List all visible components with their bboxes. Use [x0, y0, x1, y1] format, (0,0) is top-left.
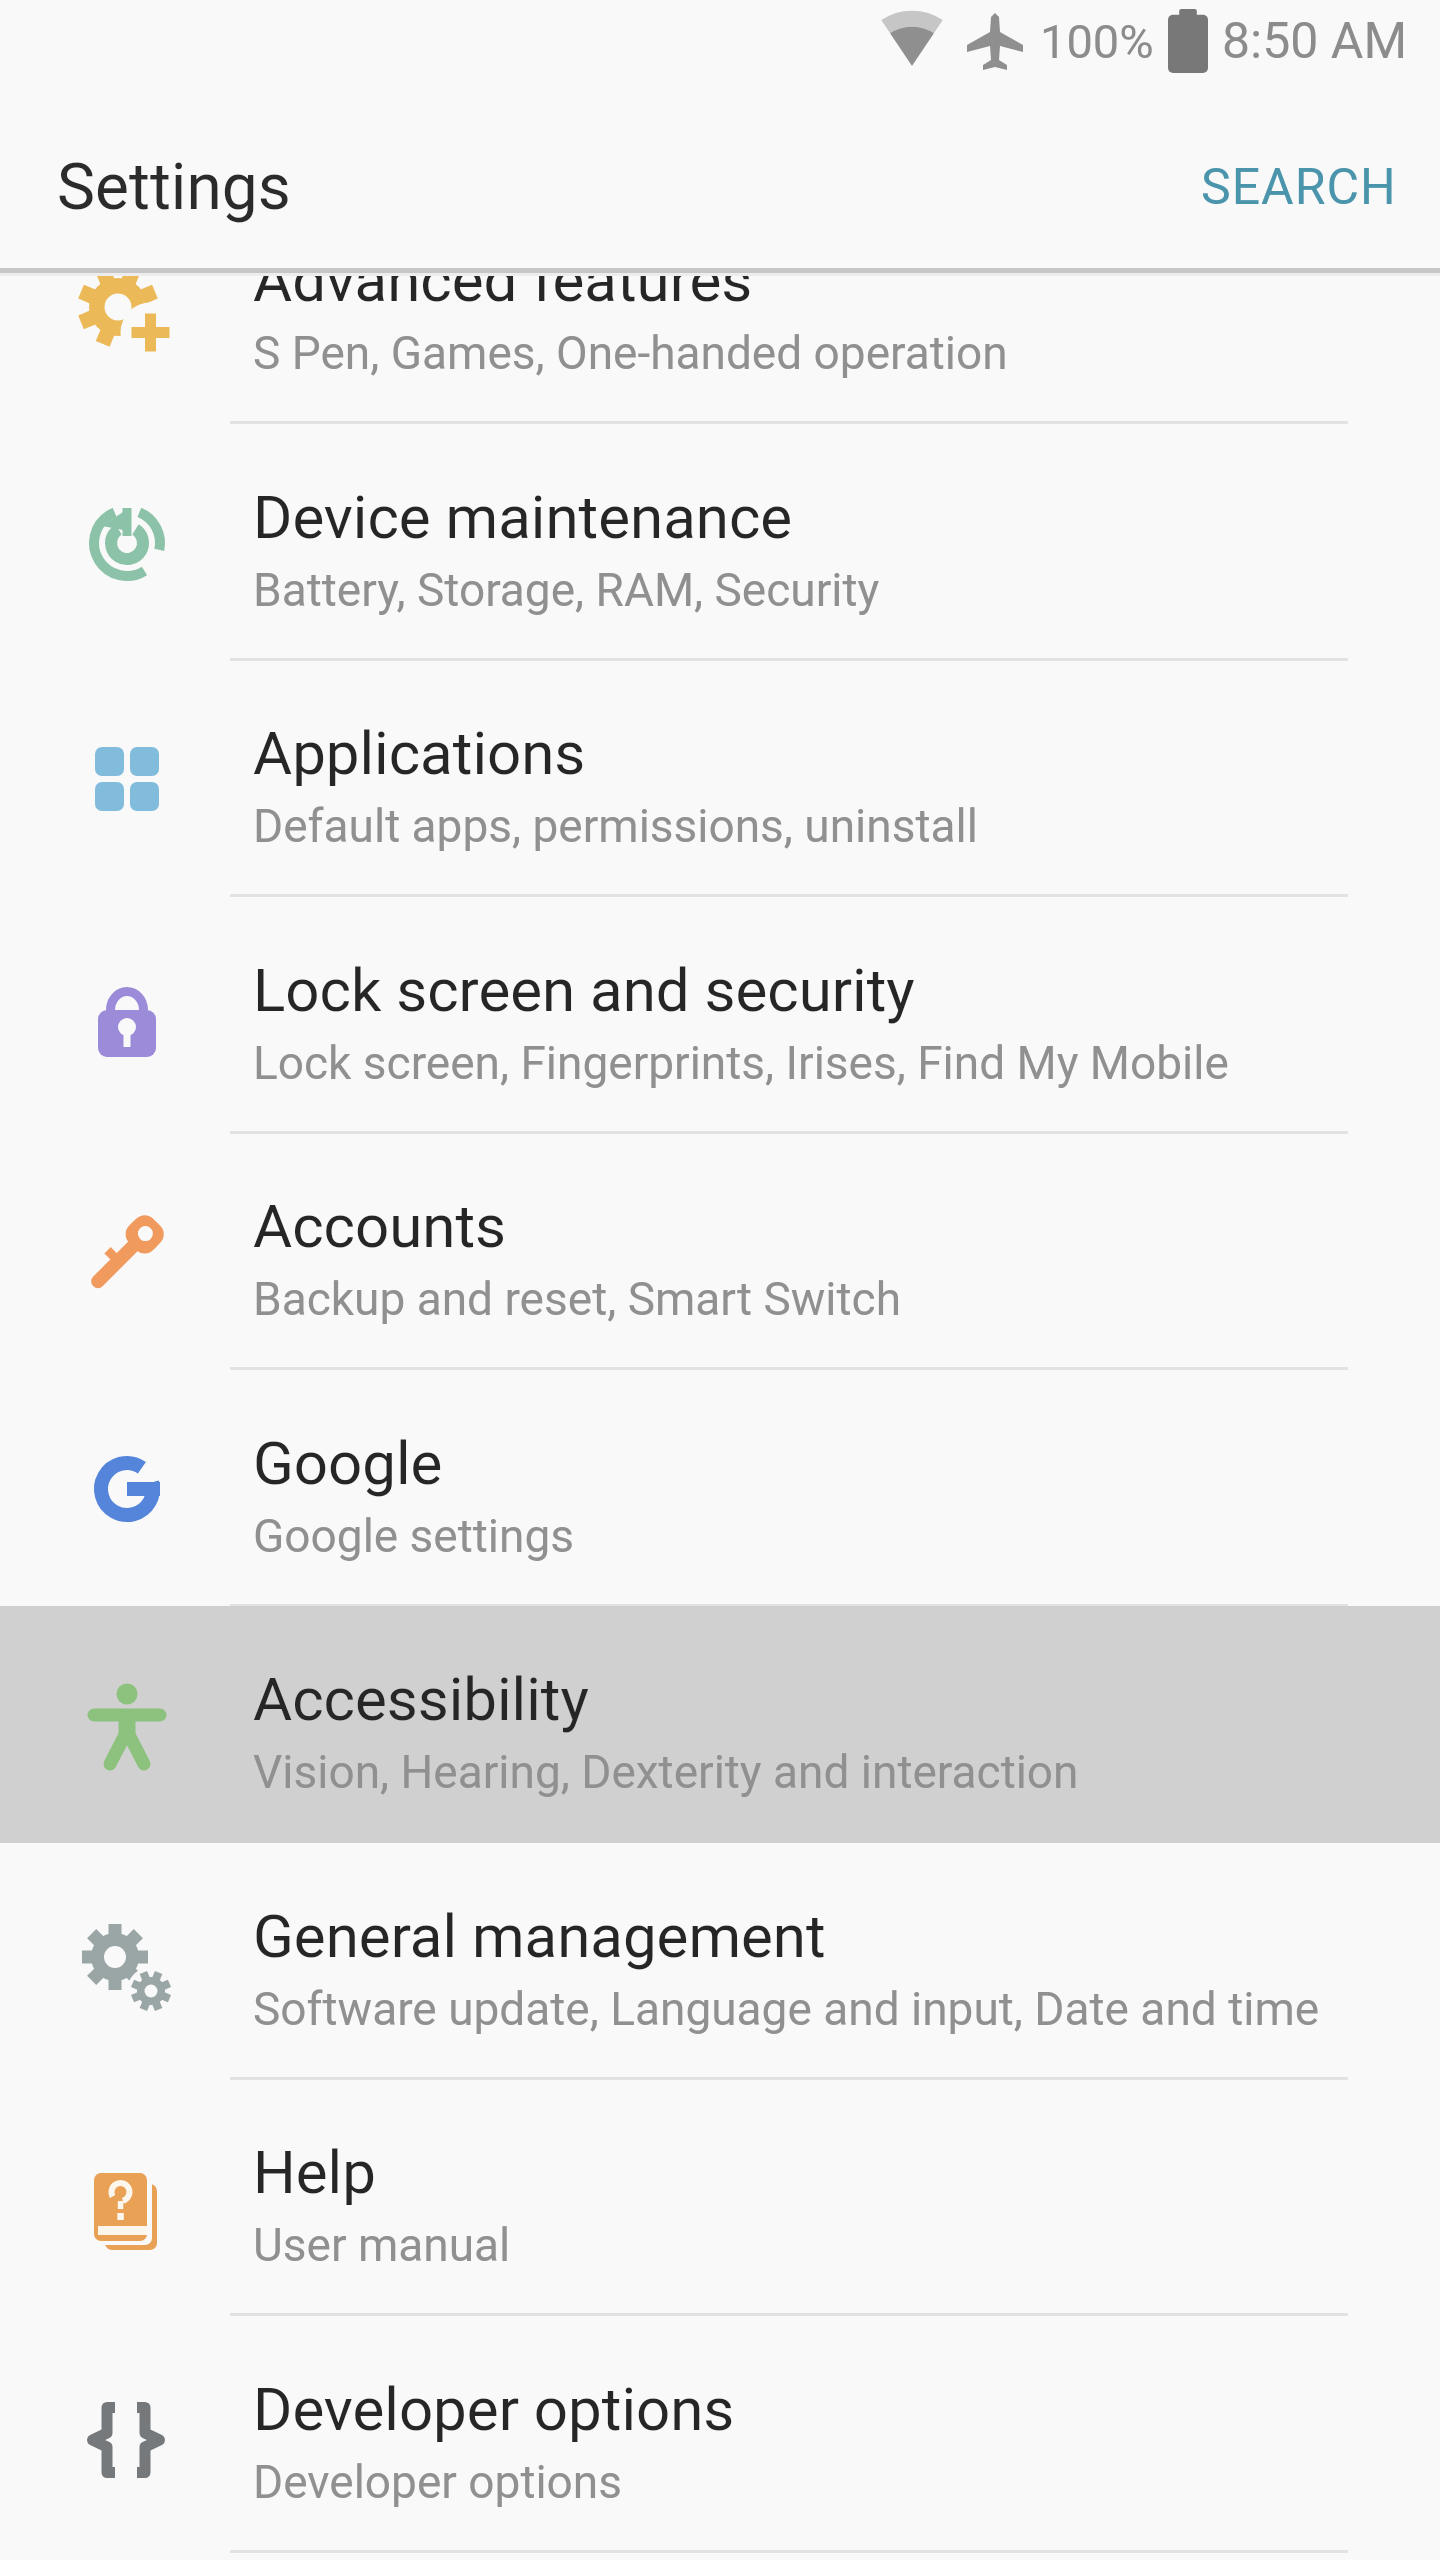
staticText: 100%	[1040, 14, 1154, 69]
staticText: Default apps, permissions, uninstall	[253, 799, 978, 853]
staticText: Backup and reset, Smart Switch	[253, 1272, 902, 1326]
staticText: Google	[253, 1428, 443, 1498]
staticText: General management	[253, 1901, 826, 1971]
button[interactable]: Help	[0, 2079, 1440, 2316]
staticText: Help	[253, 2137, 376, 2207]
button[interactable]: Lock screen and security	[0, 897, 1440, 1134]
button[interactable]: Device maintenance	[0, 424, 1440, 661]
staticText: Lock screen, Fingerprints, Irises, Find …	[253, 1036, 1229, 1090]
staticText: Software update, Language and input, Dat…	[253, 1982, 1320, 2036]
staticText: Applications	[253, 718, 586, 788]
staticText: User manual	[253, 2218, 511, 2272]
staticText: SEARCH	[1201, 158, 1397, 217]
staticText: Lock screen and security	[253, 955, 915, 1025]
button[interactable]: Developer options	[0, 2316, 1440, 2553]
button[interactable]: Applications	[0, 660, 1440, 897]
button[interactable]: Accounts	[0, 1133, 1440, 1370]
staticText: 8:50 AM	[1222, 12, 1408, 71]
button[interactable]: General management	[0, 1843, 1440, 2080]
staticText: Developer options	[253, 2374, 735, 2444]
staticText: Settings	[57, 150, 291, 225]
staticText: Battery, Storage, RAM, Security	[253, 563, 880, 617]
staticText: Developer options	[253, 2455, 622, 2509]
staticText: Vision, Hearing, Dexterity and interacti…	[253, 1745, 1079, 1799]
staticText: Accessibility	[253, 1664, 589, 1734]
button[interactable]: Accessibility	[0, 1606, 1440, 1843]
button[interactable]: SEARCH	[1201, 158, 1397, 217]
staticText: Google settings	[253, 1509, 575, 1563]
staticText: Device maintenance	[253, 482, 793, 552]
button[interactable]: Google	[0, 1370, 1440, 1607]
staticText: Advanced features	[253, 276, 753, 315]
staticText: Accounts	[253, 1191, 506, 1261]
button[interactable]: Advanced features	[0, 276, 1440, 424]
staticText: S Pen, Games, One-handed operation	[253, 326, 1008, 380]
